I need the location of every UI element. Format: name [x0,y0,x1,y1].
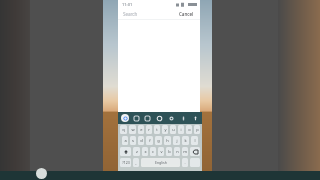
staticText: y [164,127,167,132]
button[interactable]: b [166,147,172,156]
button[interactable]: n [174,147,180,156]
button[interactable] [190,158,200,167]
button[interactable]: v [158,147,164,156]
staticText: t [156,127,158,132]
button[interactable]: s [130,136,136,145]
button[interactable]: , [133,158,139,167]
staticText: i [180,127,182,132]
staticText: English [155,160,167,165]
button[interactable]: Stickers [132,114,140,122]
button[interactable]: f [146,136,153,145]
button[interactable]: GIF [143,114,151,122]
button[interactable]: ?123 [120,158,131,167]
button[interactable]: a [122,136,128,145]
button[interactable]: p [194,125,200,134]
staticText: Cancel [179,11,194,17]
staticText: a [124,138,127,143]
button[interactable]: Emoji [155,114,163,122]
staticText: . [184,160,186,165]
button[interactable]: y [162,125,168,134]
button[interactable]: Channel avatar [36,168,47,179]
staticText: x [144,149,147,154]
staticText: g [157,138,160,143]
button[interactable]: m [182,147,188,156]
staticText: l [194,138,196,143]
staticText: d [140,138,143,143]
staticText: f [149,138,151,143]
staticText: 11:01 [122,2,133,7]
staticText: w [131,127,135,132]
staticText: o [188,127,191,132]
button[interactable] [190,147,200,156]
staticText: ?123 [122,160,130,165]
staticText: j [176,138,178,143]
button[interactable]: Settings [167,114,175,122]
button[interactable]: k [182,136,189,145]
staticText: r [148,127,150,132]
button[interactable] [120,147,131,156]
staticText: , [135,160,137,165]
button[interactable]: d [138,136,144,145]
button[interactable]: Voice input [191,114,199,122]
button[interactable]: j [173,136,180,145]
staticText: s [132,138,134,143]
staticText: m [183,149,187,154]
staticText: k [184,138,187,143]
button[interactable]: Cancel [178,10,195,18]
staticText: u [172,127,175,132]
staticText: c [152,149,154,154]
staticText: h [166,138,169,143]
button[interactable]: l [191,136,198,145]
button[interactable]: i [178,125,184,134]
button[interactable]: h [164,136,171,145]
button[interactable]: More [179,114,187,122]
staticText: q [122,127,125,132]
staticText: p [196,127,199,132]
button[interactable]: c [150,147,156,156]
button[interactable]: e [138,125,144,134]
button[interactable]: q [120,125,127,134]
staticText: z [136,149,138,154]
staticText: n [176,149,179,154]
button[interactable]: t [154,125,160,134]
button[interactable]: Google [121,114,129,122]
staticText: e [140,127,143,132]
button[interactable]: u [170,125,176,134]
button[interactable]: z [133,147,140,156]
button[interactable]: g [155,136,162,145]
button[interactable]: x [142,147,148,156]
staticText: b [168,149,171,154]
button[interactable]: w [129,125,136,134]
staticText: v [160,149,163,154]
button[interactable]: . [182,158,188,167]
button[interactable]: r [146,125,152,134]
button[interactable]: English [141,158,180,167]
button[interactable]: o [186,125,192,134]
staticText: Search [123,11,138,17]
